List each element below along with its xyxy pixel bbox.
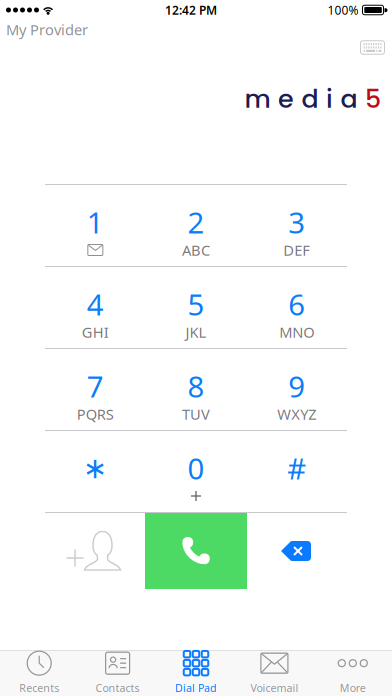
staticText: 5 — [365, 81, 381, 117]
staticText: More — [340, 681, 366, 695]
button[interactable]: 6 — [246, 267, 347, 348]
button[interactable]: # — [246, 431, 347, 512]
staticText: 9 — [288, 366, 305, 405]
staticText: 1 — [87, 202, 104, 241]
button[interactable]: Contacts — [78, 650, 157, 696]
button[interactable]: 9 — [246, 349, 347, 430]
staticText: 3 — [288, 202, 305, 241]
staticText: MNO — [279, 322, 314, 342]
staticText: 7 — [87, 366, 104, 405]
button[interactable]: 2 — [146, 185, 246, 266]
button[interactable]: Add Contact — [0, 513, 145, 589]
staticText: 100% — [327, 2, 358, 18]
staticText: 6 — [288, 284, 305, 323]
staticText: Dial Pad — [175, 681, 217, 695]
button[interactable]: Voicemail — [235, 650, 314, 696]
staticText: ABC — [182, 240, 210, 260]
button[interactable]: Delete — [247, 513, 392, 589]
button[interactable]: Dial Pad — [157, 650, 235, 696]
button[interactable]: 5 — [146, 267, 246, 348]
staticText: a — [340, 81, 357, 117]
staticText: WXYZ — [277, 404, 316, 424]
staticText: Contacts — [96, 681, 140, 695]
button[interactable]: 3 — [246, 185, 347, 266]
staticText: e — [278, 81, 294, 117]
staticText: 2 — [187, 202, 204, 241]
staticText: DEF — [283, 240, 310, 260]
staticText: 5 — [187, 284, 204, 323]
staticText: ∗ — [83, 451, 108, 485]
staticText: My Provider — [6, 20, 88, 39]
staticText: 8 — [187, 366, 204, 405]
staticText: GHI — [82, 322, 109, 342]
staticText: 12:42 PM — [165, 2, 217, 18]
staticText: TUV — [182, 404, 210, 424]
button[interactable]: 4 — [45, 267, 146, 348]
button[interactable]: Keyboard — [360, 40, 392, 59]
staticText: # — [287, 448, 306, 487]
button[interactable]: 1 — [45, 185, 146, 266]
staticText: i — [326, 81, 333, 117]
button[interactable]: 0 — [146, 431, 246, 512]
button[interactable]: 7 — [45, 349, 146, 430]
staticText: JKL — [185, 322, 206, 342]
button[interactable]: Recents — [0, 650, 78, 696]
button[interactable]: Call — [145, 513, 247, 589]
staticText: d — [301, 81, 318, 117]
staticText: PQRS — [77, 404, 114, 424]
staticText: 0 — [187, 448, 204, 487]
staticText: Voicemail — [250, 681, 298, 695]
button[interactable]: More — [314, 650, 392, 696]
staticText: m — [244, 81, 270, 117]
button[interactable]: 8 — [146, 349, 246, 430]
staticText: 4 — [87, 284, 104, 323]
staticText: Recents — [19, 681, 59, 695]
button[interactable]: ∗ — [45, 431, 146, 512]
